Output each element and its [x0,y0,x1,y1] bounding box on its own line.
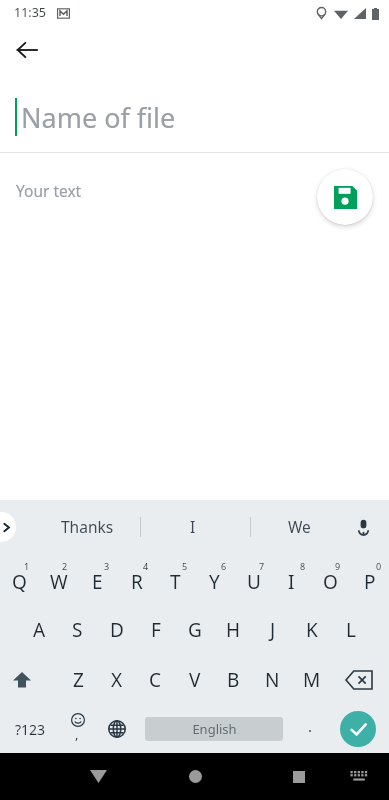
button[interactable]: O [311,553,350,605]
staticText: S [72,617,83,643]
button[interactable]: We [254,500,344,553]
staticText: We [288,516,311,537]
button[interactable]: Backspace [336,655,382,705]
staticText: 11:35 [14,4,46,21]
staticText: B [227,667,240,693]
button[interactable]: Voice input [343,507,383,547]
button[interactable]: Back [0,26,54,74]
button[interactable]: Emoji and comma [60,705,96,753]
staticText: 8 [300,560,306,572]
staticText: G [188,617,202,643]
staticText: J [270,617,276,643]
button[interactable]: English [145,717,283,741]
staticText: 0 [376,560,382,572]
button[interactable]: Q [0,553,39,605]
staticText: Z [73,667,84,693]
staticText: O [323,569,338,595]
button[interactable]: Thanks [42,500,132,553]
staticText: M [303,667,321,693]
button[interactable]: More suggestions [0,512,16,542]
staticText: I [190,516,196,537]
button[interactable]: N [253,655,292,705]
button[interactable]: B [214,655,253,705]
button[interactable]: Name of file [0,74,389,152]
button[interactable]: D [97,605,136,655]
staticText: W [50,569,68,595]
staticText: Name of file [21,99,176,136]
button[interactable]: X [97,655,136,705]
button[interactable]: I [148,500,238,553]
button[interactable]: Z [59,655,98,705]
button[interactable]: G [175,605,214,655]
staticText: C [149,667,162,693]
staticText: T [170,569,181,595]
staticText: 4 [143,560,149,572]
staticText: 7 [259,560,265,572]
staticText: K [306,617,318,643]
button[interactable]: E [78,553,117,605]
button[interactable]: Save [317,169,373,225]
button[interactable]: F [136,605,175,655]
staticText: 9 [335,560,341,572]
staticText: Y [209,569,220,595]
button[interactable]: L [331,605,370,655]
staticText: Thanks [61,516,114,537]
button[interactable]: K [292,605,331,655]
staticText: D [110,617,124,643]
button[interactable]: Back [66,753,130,800]
button[interactable]: Home [163,753,227,800]
staticText: ?123 [15,720,46,739]
button[interactable]: W [39,553,78,605]
button[interactable]: C [136,655,175,705]
staticText: H [226,617,241,643]
staticText: I [288,569,295,595]
staticText: U [247,569,261,595]
button[interactable]: R [117,553,156,605]
button[interactable]: U [234,553,273,605]
staticText: V [189,667,201,693]
staticText: English [192,720,237,738]
button[interactable]: A [20,605,59,655]
button[interactable]: M [292,655,331,705]
staticText: F [151,617,161,643]
staticText: Your text [16,180,82,201]
button[interactable]: Change language [99,705,135,753]
button[interactable]: Enter [340,711,376,747]
staticText: N [265,667,280,693]
staticText: 1 [24,560,30,572]
staticText: P [364,569,376,595]
staticText: 5 [182,560,188,572]
button[interactable]: Y [195,553,234,605]
staticText: R [131,569,143,595]
button[interactable]: S [58,605,97,655]
staticText: A [33,617,46,643]
staticText: , [75,725,79,743]
button[interactable]: I [272,553,311,605]
staticText: L [346,617,356,643]
button[interactable]: P [350,553,389,605]
button[interactable]: J [253,605,292,655]
staticText: X [111,667,123,693]
button[interactable]: Shift [0,655,44,705]
button[interactable]: H [214,605,253,655]
staticText: 6 [221,560,227,572]
button[interactable]: T [156,553,195,605]
button[interactable]: Hide keyboard [337,753,381,800]
staticText: Q [12,569,27,595]
button[interactable]: ?123 [2,705,58,753]
staticText: 2 [62,560,68,572]
button[interactable]: Recent apps [271,753,327,800]
staticText: 3 [104,560,110,572]
staticText: . [308,716,313,736]
button[interactable]: V [175,655,214,705]
button[interactable]: Your text [0,153,389,243]
staticText: E [92,569,103,595]
button[interactable]: . [292,705,328,753]
